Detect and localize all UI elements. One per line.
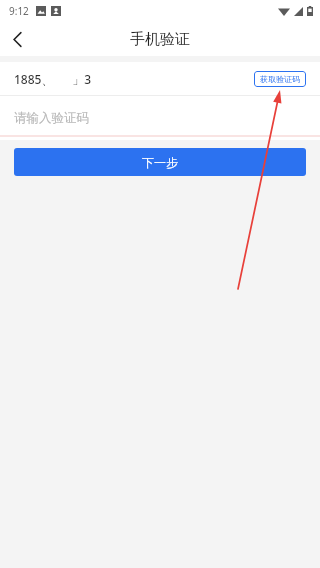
staticText: 1885、 」3 <box>14 71 92 87</box>
button[interactable]: 下一步 <box>14 148 306 176</box>
staticText: 下一步 <box>142 155 178 170</box>
button[interactable]: 获取验证码 <box>254 71 306 87</box>
staticText: 手机验证 <box>130 30 190 49</box>
button[interactable]: 请输入验证码 <box>0 96 320 140</box>
staticText: 9:12 <box>9 4 29 18</box>
staticText: 获取验证码 <box>260 74 300 84</box>
button[interactable]: Back <box>0 22 34 56</box>
staticText: 请输入验证码 <box>14 110 89 126</box>
